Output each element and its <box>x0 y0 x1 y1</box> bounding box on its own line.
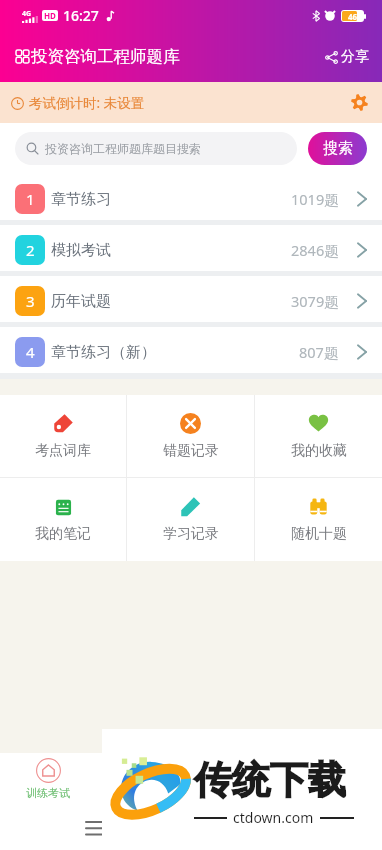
staticText: 投资咨询工程师题库题目搜索 <box>45 141 201 156</box>
staticText: 传统下载 <box>194 756 346 804</box>
button[interactable]: 搜索 <box>308 132 367 165</box>
button[interactable]: 考点词库 <box>0 395 126 477</box>
staticText: 错题记录 <box>163 442 219 460</box>
staticText: 4G <box>22 9 32 19</box>
staticText: 分享 <box>341 48 369 66</box>
button[interactable]: 我的收藏 <box>255 395 382 477</box>
button[interactable]: 2 <box>0 225 382 271</box>
staticText: 我的收藏 <box>291 442 347 460</box>
button[interactable]: 随机十题 <box>255 478 382 561</box>
staticText: 1 <box>26 189 35 209</box>
staticText: 考点词库 <box>35 442 91 460</box>
staticText: 1019题 <box>291 189 339 209</box>
button[interactable]: 我的笔记 <box>0 478 126 561</box>
staticText: 学习记录 <box>163 525 219 543</box>
button[interactable]: 学习记录 <box>127 478 254 561</box>
staticText: 2 <box>26 240 35 260</box>
staticText: 历年试题 <box>51 292 111 311</box>
staticText: 3 <box>26 291 35 311</box>
button[interactable]: 分享 <box>312 39 382 75</box>
staticText: 章节练习 <box>51 190 111 209</box>
button[interactable]: 错题记录 <box>127 395 254 477</box>
staticText: 2846题 <box>291 240 339 260</box>
staticText: 搜索 <box>323 139 353 158</box>
button[interactable]: Settings <box>351 94 382 111</box>
button[interactable]: 4 <box>0 327 382 373</box>
staticText: 3079题 <box>291 291 339 311</box>
staticText: 随机十题 <box>291 525 347 543</box>
staticText: 4 <box>26 342 35 362</box>
button[interactable]: 3 <box>0 276 382 322</box>
button[interactable]: 投资咨询工程师题库题目搜索 <box>15 132 297 165</box>
staticText: 投资咨询工程师题库 <box>31 46 180 67</box>
staticText: 训练考试 <box>26 786 70 800</box>
staticText: ctdown.com <box>233 808 314 827</box>
staticText: 我的笔记 <box>35 525 91 543</box>
staticText: 模拟考试 <box>51 241 111 260</box>
staticText: 807题 <box>299 342 339 362</box>
staticText: 考试倒计时: 未设置 <box>29 94 145 112</box>
button[interactable]: 训练考试 <box>18 754 78 804</box>
staticText: HD <box>44 10 56 21</box>
button[interactable]: 1 <box>0 174 382 220</box>
staticText: 16:27 <box>63 6 99 25</box>
staticText: 章节练习（新） <box>51 343 156 362</box>
staticText: 46 <box>348 11 358 21</box>
